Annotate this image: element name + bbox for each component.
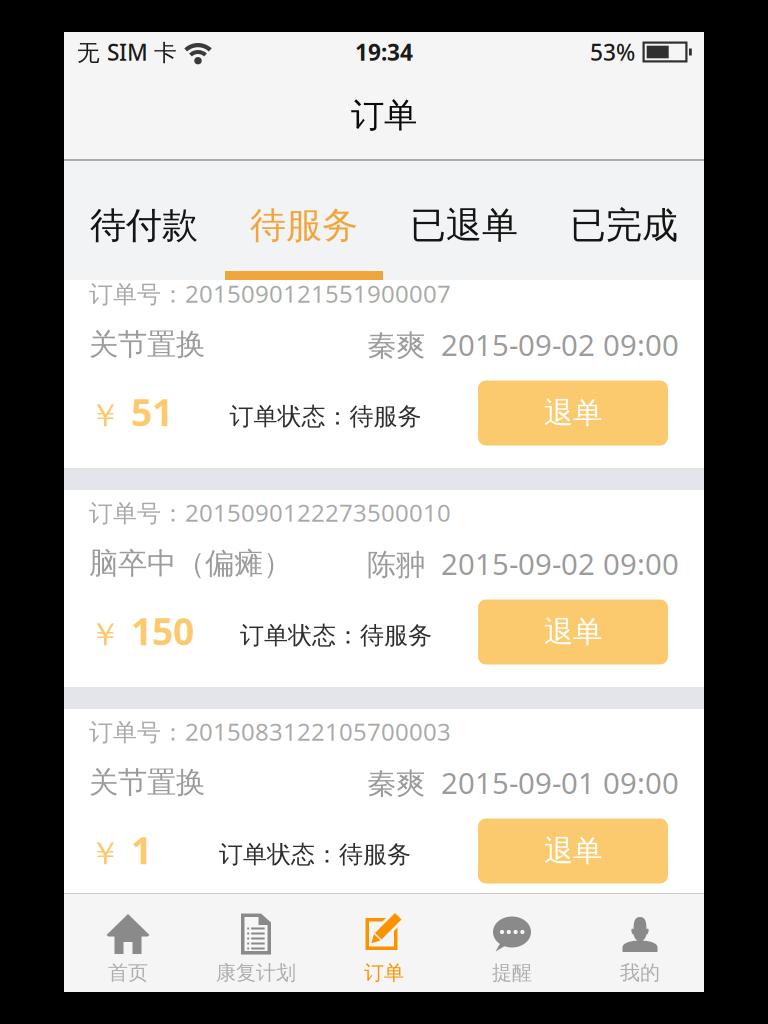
staticText: 已退单 [410, 203, 518, 248]
staticText: 订单状态：待服务 [240, 621, 432, 650]
button[interactable]: 退单 [478, 599, 668, 664]
staticText: 我的 [620, 960, 660, 985]
staticText: 订单 [351, 95, 417, 136]
button[interactable]: 已退单 [384, 161, 544, 280]
staticText: 退单 [544, 614, 602, 650]
staticText: 脑卒中（偏瘫） [89, 545, 292, 581]
staticText: 订单号：2015090122273500010 [89, 497, 451, 528]
staticText: 陈翀 2015-09-02 09:00 [367, 544, 679, 583]
button[interactable]: 已完成 [544, 161, 704, 280]
staticText: 关节置换 [89, 326, 205, 362]
staticText: 已完成 [570, 203, 678, 248]
staticText: 150 [121, 606, 194, 655]
staticText: 退单 [544, 833, 602, 869]
staticText: ￥ [89, 834, 121, 873]
staticText: 退单 [544, 395, 602, 431]
staticText: ￥ [89, 615, 121, 654]
staticText: 订单 [364, 960, 404, 985]
staticText: 51 [121, 387, 173, 436]
button[interactable]: 提醒 [448, 894, 576, 992]
staticText: 提醒 [492, 960, 532, 985]
staticText: 订单号：2015090121551900007 [89, 278, 451, 309]
staticText: 秦爽 2015-09-01 09:00 [367, 763, 679, 802]
staticText: 秦爽 2015-09-02 09:00 [367, 325, 679, 364]
staticText: 1 [121, 825, 152, 874]
staticText: 19:34 [355, 37, 413, 67]
staticText: 首页 [108, 960, 148, 985]
button[interactable]: 订单 [320, 894, 448, 992]
button[interactable]: 待付款 [64, 161, 224, 280]
staticText: 订单状态：待服务 [219, 840, 411, 869]
staticText: ￥ [89, 396, 121, 435]
staticText: 53% [590, 37, 635, 67]
staticText: 订单号：2015083122105700003 [89, 716, 451, 747]
staticText: 待服务 [250, 203, 358, 248]
button[interactable]: 退单 [478, 818, 668, 883]
staticText: 无 SIM 卡 [77, 37, 177, 67]
staticText: 订单状态：待服务 [229, 402, 421, 431]
button[interactable]: 康复计划 [192, 894, 320, 992]
button[interactable]: 退单 [478, 380, 668, 445]
button[interactable]: 我的 [576, 894, 704, 992]
staticText: 待付款 [90, 203, 198, 248]
staticText: 关节置换 [89, 764, 205, 800]
button[interactable]: 首页 [64, 894, 192, 992]
button[interactable]: 待服务 [224, 161, 384, 280]
staticText: 康复计划 [216, 960, 296, 985]
